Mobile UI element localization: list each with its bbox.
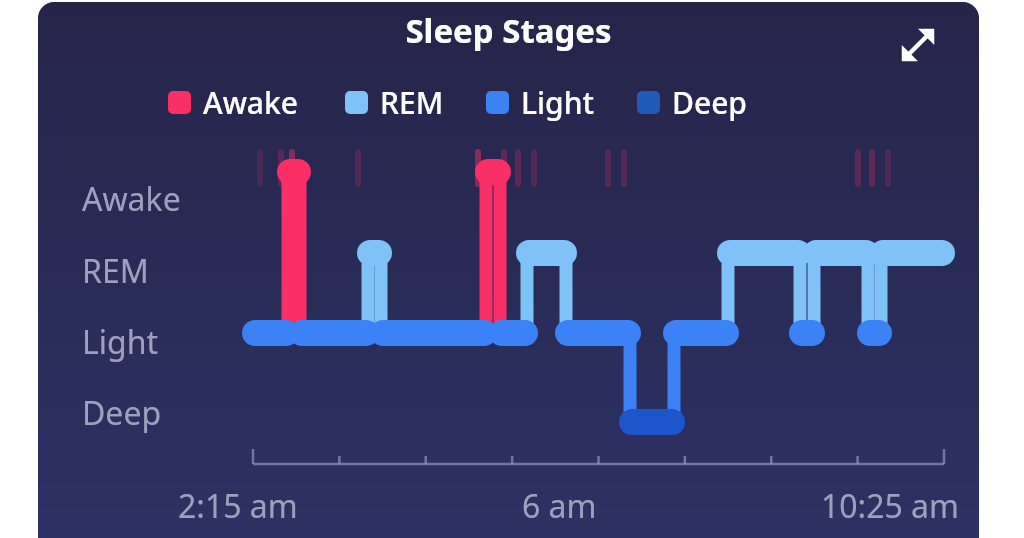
staticText: Awake <box>82 177 181 221</box>
staticText: Deep <box>82 391 162 435</box>
staticText: Awake <box>203 82 299 123</box>
staticText: Light <box>82 320 159 364</box>
staticText: Light <box>521 82 595 123</box>
staticText: REM <box>380 82 444 123</box>
staticText: Sleep Stages <box>38 8 979 53</box>
button[interactable]: Sleep stages chart <box>38 2 979 538</box>
staticText: REM <box>82 249 149 293</box>
staticText: 2:15 am <box>178 484 298 528</box>
staticText: 10:25 am <box>821 484 959 528</box>
button[interactable]: Expand chart <box>883 10 953 80</box>
staticText: Deep <box>672 82 747 123</box>
staticText: 6 am <box>522 484 597 528</box>
